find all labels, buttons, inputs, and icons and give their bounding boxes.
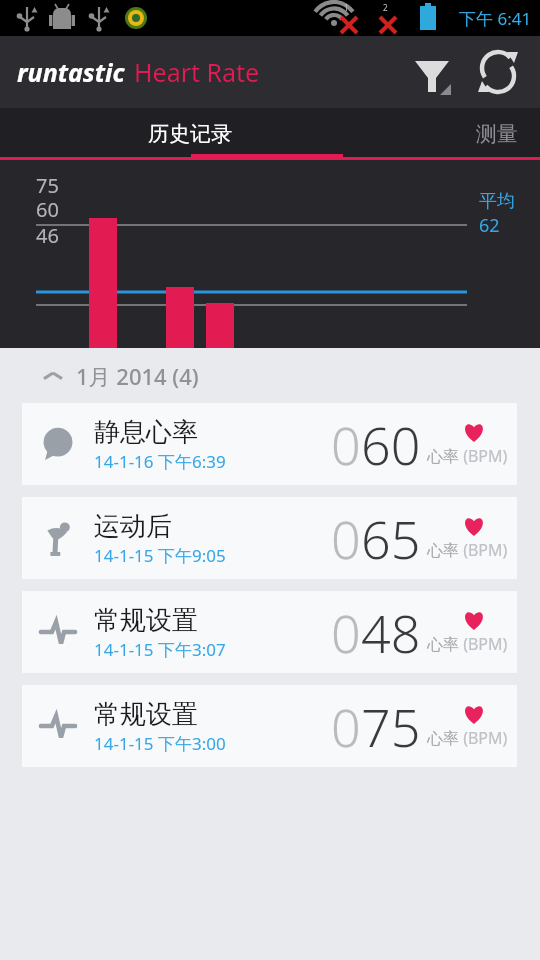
staticText: 心率 — [427, 635, 459, 655]
staticText: 0 — [331, 691, 361, 762]
staticText: 平均 — [479, 190, 515, 213]
staticText: runtastic — [17, 55, 125, 89]
staticText: 60 — [36, 196, 59, 223]
button[interactable]: 常规设置 — [22, 685, 517, 767]
staticText: 常规设置 — [94, 698, 198, 731]
staticText: (BPM) — [459, 727, 508, 749]
staticText: 测量 — [476, 121, 518, 147]
staticText: 常规设置 — [94, 604, 198, 637]
button[interactable]: 常规设置 — [22, 591, 517, 673]
staticText: 1月 2014 (4) — [76, 361, 199, 391]
staticText: 2 — [383, 2, 388, 13]
button[interactable]: Filter — [408, 48, 456, 96]
staticText: 14-1-15 下午9:05 — [94, 544, 226, 567]
staticText: 0 — [331, 503, 361, 574]
staticText: 60 — [361, 409, 421, 480]
staticText: 75 — [36, 172, 59, 199]
button[interactable]: 运动后 — [22, 497, 517, 579]
staticText: 14-1-15 下午3:07 — [94, 638, 226, 661]
staticText: 0 — [331, 597, 361, 668]
staticText: 下午 6:41 — [459, 7, 532, 30]
staticText: 1 — [344, 2, 349, 13]
staticText: 65 — [361, 503, 421, 574]
button[interactable]: 测量 — [390, 108, 540, 160]
button[interactable]: 静息心率 — [22, 403, 517, 485]
staticText: 14-1-16 下午6:39 — [94, 450, 226, 473]
staticText: 48 — [361, 597, 421, 668]
staticText: 静息心率 — [94, 416, 198, 449]
button[interactable]: 历史记录 — [0, 108, 380, 160]
button[interactable]: 1月 2014 (4) — [0, 348, 540, 403]
staticText: (BPM) — [459, 445, 508, 467]
staticText: 心率 — [427, 447, 459, 467]
staticText: 心率 — [427, 729, 459, 749]
staticText: (BPM) — [459, 633, 508, 655]
staticText: 心率 — [427, 541, 459, 561]
staticText: 46 — [36, 222, 59, 249]
staticText: 0 — [331, 409, 361, 480]
staticText: 75 — [361, 691, 421, 762]
staticText: 运动后 — [94, 510, 172, 543]
staticText: 62 — [479, 213, 500, 238]
staticText: Heart Rate — [134, 55, 260, 89]
staticText: (BPM) — [459, 539, 508, 561]
button[interactable]: Refresh — [474, 48, 522, 96]
staticText: 历史记录 — [148, 121, 232, 147]
staticText: 14-1-15 下午3:00 — [94, 732, 226, 755]
